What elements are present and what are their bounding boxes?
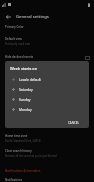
- button[interactable]: CANCEL: [63, 118, 84, 127]
- staticText: Home time zone: [5, 134, 28, 138]
- button[interactable]: Primary Color: [0, 25, 94, 35]
- button[interactable]: Sunday: [5, 94, 89, 104]
- button[interactable]: Clear search history: [0, 149, 94, 163]
- staticText: CANCEL: [68, 121, 79, 125]
- button[interactable]: Monday: [5, 104, 89, 114]
- staticText: Locale default: [19, 77, 41, 81]
- staticText: Hide declined events: [5, 55, 34, 59]
- staticText: Week starts on: [10, 66, 38, 71]
- staticText: Notifications & reminders: [5, 169, 41, 173]
- staticText: Saturday: [19, 87, 33, 91]
- button[interactable]: Hide declined events: [0, 55, 94, 65]
- staticText: General settings: [16, 14, 49, 20]
- staticText: Previously used view: [5, 42, 31, 46]
- staticText: Notifications: [5, 178, 23, 182]
- staticText: Primary Color: [5, 25, 24, 29]
- button[interactable]: Saturday: [5, 84, 89, 94]
- staticText: Clear search history: [5, 149, 32, 153]
- staticText: Sunday: [19, 97, 31, 101]
- button[interactable]: Home time zone: [0, 134, 94, 148]
- button[interactable]: Default view: [0, 37, 94, 51]
- button[interactable]: Back: [3, 12, 13, 22]
- button[interactable]: Locale default: [5, 74, 89, 84]
- staticText: Default view: [5, 37, 22, 41]
- staticText: Remove all the searches you've performed: [5, 154, 57, 158]
- staticText: Monday: [19, 107, 32, 111]
- staticText: Pacific Standard Time, GMT-8: [5, 139, 41, 143]
